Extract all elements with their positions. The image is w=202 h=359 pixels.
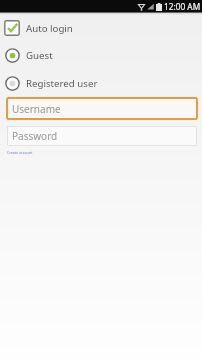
button[interactable]: Create account	[7, 150, 33, 155]
staticText: 12:00 AM	[164, 1, 201, 12]
button[interactable]: Registered user	[0, 75, 202, 91]
button[interactable]: Username	[6, 97, 198, 120]
staticText: Guest	[26, 49, 53, 62]
staticText: Auto login	[26, 22, 73, 35]
other: Wi-Fi	[138, 3, 145, 11]
button[interactable]: Guest	[0, 47, 202, 63]
staticText: Password	[12, 129, 58, 143]
button[interactable]: Password	[7, 126, 197, 146]
button[interactable]: Auto login	[0, 17, 202, 39]
staticText: Username	[12, 102, 61, 116]
other: Battery	[156, 3, 162, 11]
staticText: Registered user	[26, 77, 98, 90]
other: Mobile signal	[147, 3, 154, 10]
